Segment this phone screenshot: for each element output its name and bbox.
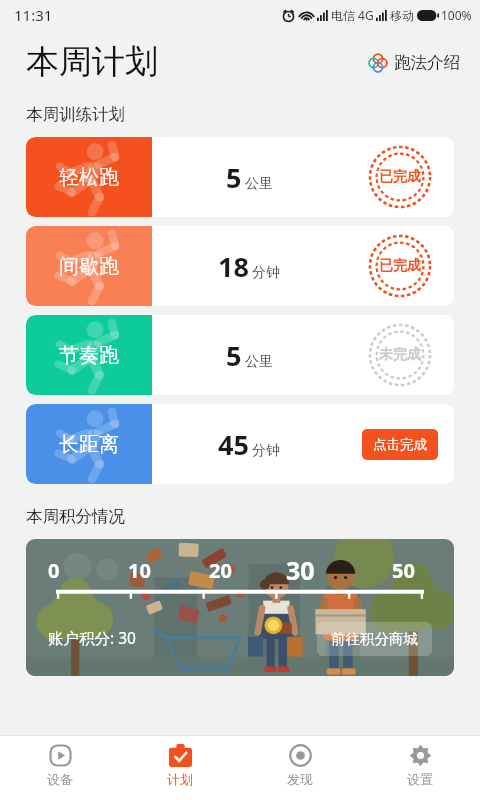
staticText: 10 [128, 557, 151, 584]
staticText: 已完成 [379, 168, 421, 186]
button[interactable]: 发现 [240, 736, 360, 800]
staticText: 20 [209, 557, 232, 584]
button[interactable]: 长距离 [26, 404, 454, 484]
staticText: 未完成 [379, 346, 421, 364]
staticText: 本周积分情况 [26, 506, 125, 527]
button[interactable]: 0 [26, 539, 454, 676]
button[interactable]: 节奏跑 [26, 315, 454, 395]
staticText: 5 [226, 337, 242, 374]
other: 已完成 [367, 233, 433, 299]
staticText: 100% [441, 7, 472, 23]
button[interactable]: 轻松跑 [26, 137, 454, 217]
button[interactable]: 设备 [0, 736, 120, 800]
staticText: 设置 [407, 771, 433, 787]
staticText: 分钟 [252, 442, 280, 460]
staticText: 本周训练计划 [26, 104, 125, 125]
staticText: 电信 4G [331, 7, 374, 23]
staticText: 节奏跑 [59, 343, 119, 368]
staticText: 轻松跑 [59, 165, 119, 190]
staticText: 点击完成 [373, 436, 427, 453]
staticText: 已完成 [379, 257, 421, 275]
staticText: 设备 [47, 771, 73, 787]
staticText: 跑法介绍 [394, 52, 460, 73]
button[interactable]: 点击完成 [362, 429, 438, 460]
button[interactable]: 计划 [120, 736, 240, 800]
staticText: 30 [286, 553, 315, 587]
staticText: 50 [392, 557, 415, 584]
staticText: 间歇跑 [59, 254, 119, 279]
staticText: 前往积分商城 [331, 630, 418, 648]
other: 未完成 [367, 322, 433, 388]
staticText: 公里 [245, 175, 273, 193]
staticText: 0 [48, 557, 60, 584]
staticText: 账户积分: 30 [48, 627, 136, 648]
staticText: 计划 [167, 771, 193, 787]
button[interactable]: 跑法介绍 [366, 48, 462, 77]
staticText: 5 [226, 159, 242, 196]
staticText: 发现 [287, 771, 313, 787]
staticText: 本周计划 [26, 41, 158, 83]
button[interactable]: 间歇跑 [26, 226, 454, 306]
other: 已完成 [367, 144, 433, 210]
staticText: 长距离 [59, 432, 119, 457]
staticText: 分钟 [252, 264, 280, 282]
button[interactable]: 前往积分商城 [317, 622, 432, 656]
staticText: 45 [218, 426, 249, 463]
button[interactable]: 设置 [360, 736, 480, 800]
staticText: 移动 [390, 8, 414, 23]
staticText: 公里 [245, 353, 273, 371]
staticText: 18 [218, 248, 249, 285]
staticText: 11:31 [14, 5, 53, 25]
